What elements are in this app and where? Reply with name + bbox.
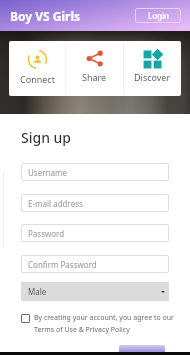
button[interactable]: Connect [9, 41, 65, 96]
button[interactable] [119, 345, 165, 352]
button[interactable]: Male [21, 282, 169, 301]
button[interactable]: By creating your account, you agree to o… [21, 313, 181, 335]
staticText: By creating your account, you agree to o… [34, 313, 174, 323]
button[interactable]: Confirm Password [21, 255, 169, 273]
button[interactable]: Login [135, 8, 181, 23]
staticText: Discover [134, 71, 171, 83]
staticText: Password [28, 228, 65, 239]
button[interactable]: Username [21, 163, 169, 181]
staticText: Sign up [21, 128, 72, 147]
staticText: Connect [20, 73, 55, 85]
staticText: Share [82, 71, 107, 83]
staticText: Boy VS Girls [10, 8, 80, 24]
staticText: Confirm Password [28, 259, 97, 270]
staticText: Username [28, 167, 67, 178]
button[interactable]: Discover [124, 41, 181, 96]
button[interactable]: E-mail address [21, 194, 169, 212]
staticText: Login [148, 10, 169, 21]
staticText: Terms of Use & Privacy Policy [34, 325, 130, 335]
staticText: Male [28, 286, 47, 297]
button[interactable]: Share [66, 41, 123, 96]
button[interactable]: Password [21, 224, 169, 242]
staticText: E-mail address [28, 198, 83, 209]
